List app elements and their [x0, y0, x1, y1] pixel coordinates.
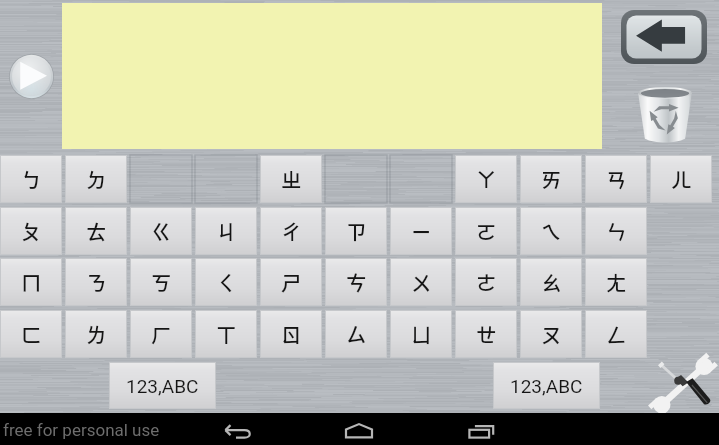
button[interactable]: ㄦ [650, 155, 712, 203]
staticText: ㄜ [476, 267, 497, 297]
staticText: ㄔ [281, 216, 302, 246]
button[interactable]: ㄢ [585, 155, 647, 203]
staticText: ㄛ [476, 216, 497, 246]
button[interactable]: ㄈ [0, 310, 62, 358]
button[interactable]: ㄧ [390, 207, 452, 255]
staticText: ㄇ [21, 267, 42, 297]
button[interactable]: ㄎ [130, 258, 192, 306]
staticText: ㄦ [671, 164, 692, 194]
button[interactable]: Play [9, 54, 54, 99]
button[interactable]: ㄔ [260, 207, 322, 255]
button[interactable]: ㄋ [65, 258, 127, 306]
button[interactable]: Delete [634, 82, 696, 144]
button[interactable]: ㄌ [65, 310, 127, 358]
button[interactable]: ㄖ [260, 310, 322, 358]
staticText: free for personal use [3, 420, 160, 440]
staticText: ㄡ [541, 319, 562, 349]
button[interactable]: ㄚ [455, 155, 517, 203]
button[interactable]: ㄓ [260, 155, 322, 203]
button[interactable]: ㄞ [520, 155, 582, 203]
button[interactable]: Home [319, 413, 399, 445]
button[interactable]: ㄘ [325, 258, 387, 306]
staticText: ㄖ [281, 319, 302, 349]
button[interactable]: ㄏ [130, 310, 192, 358]
button[interactable]: ㄐ [195, 207, 257, 255]
staticText: ㄉ [86, 164, 107, 194]
staticText: ㄍ [151, 216, 172, 246]
staticText: ㄙ [346, 319, 367, 349]
button[interactable]: ㄣ [585, 207, 647, 255]
button[interactable]: ㄤ [585, 258, 647, 306]
button[interactable]: 123,ABC [109, 362, 216, 409]
staticText: ㄌ [86, 319, 107, 349]
staticText: ㄐ [216, 216, 237, 246]
button[interactable]: Back [198, 413, 278, 445]
button[interactable]: ㄒ [195, 310, 257, 358]
button[interactable]: ㄠ [520, 258, 582, 306]
staticText: ㄋ [86, 267, 107, 297]
staticText: ㄥ [606, 319, 627, 349]
button[interactable]: ㄗ [325, 207, 387, 255]
button[interactable]: ㄛ [455, 207, 517, 255]
staticText: ㄩ [411, 319, 432, 349]
staticText: ㄢ [606, 164, 627, 194]
button[interactable]: ㄡ [520, 310, 582, 358]
staticText: ㄠ [541, 267, 562, 297]
button[interactable]: ㄅ [0, 155, 62, 203]
staticText: ㄣ [606, 216, 627, 246]
staticText: ㄘ [346, 267, 367, 297]
button[interactable]: ㄊ [65, 207, 127, 255]
staticText: ㄎ [151, 267, 172, 297]
button[interactable]: Settings [650, 358, 714, 412]
button[interactable]: Recent apps [441, 413, 521, 445]
staticText: ㄆ [21, 216, 42, 246]
staticText: ㄏ [151, 319, 172, 349]
button[interactable]: ㄜ [455, 258, 517, 306]
button[interactable]: ㄆ [0, 207, 62, 255]
staticText: ㄊ [86, 216, 107, 246]
button[interactable]: ㄍ [130, 207, 192, 255]
staticText: ㄤ [606, 267, 627, 297]
button[interactable]: ㄙ [325, 310, 387, 358]
button[interactable]: ㄉ [65, 155, 127, 203]
button[interactable]: ㄨ [390, 258, 452, 306]
button[interactable]: 123,ABC [493, 362, 600, 409]
staticText: ㄨ [411, 267, 432, 297]
staticText: ㄅ [21, 164, 42, 194]
staticText: ㄚ [476, 164, 497, 194]
staticText: ㄕ [281, 267, 302, 297]
button[interactable]: ㄇ [0, 258, 62, 306]
button[interactable]: ㄟ [520, 207, 582, 255]
button[interactable]: ㄑ [195, 258, 257, 306]
staticText: ㄗ [346, 216, 367, 246]
button[interactable]: Backspace [621, 10, 707, 64]
staticText: ㄓ [281, 164, 302, 194]
staticText: 123,ABC [510, 375, 583, 397]
staticText: ㄈ [21, 319, 42, 349]
staticText: ㄞ [541, 164, 562, 194]
staticText: ㄟ [541, 216, 562, 246]
staticText: ㄑ [216, 267, 237, 297]
staticText: 123,ABC [126, 375, 199, 397]
staticText: ㄒ [216, 319, 237, 349]
button[interactable]: ㄩ [390, 310, 452, 358]
staticText: ㄧ [411, 216, 432, 246]
button[interactable]: ㄝ [455, 310, 517, 358]
button[interactable]: ㄥ [585, 310, 647, 358]
button[interactable]: ㄕ [260, 258, 322, 306]
staticText: ㄝ [476, 319, 497, 349]
